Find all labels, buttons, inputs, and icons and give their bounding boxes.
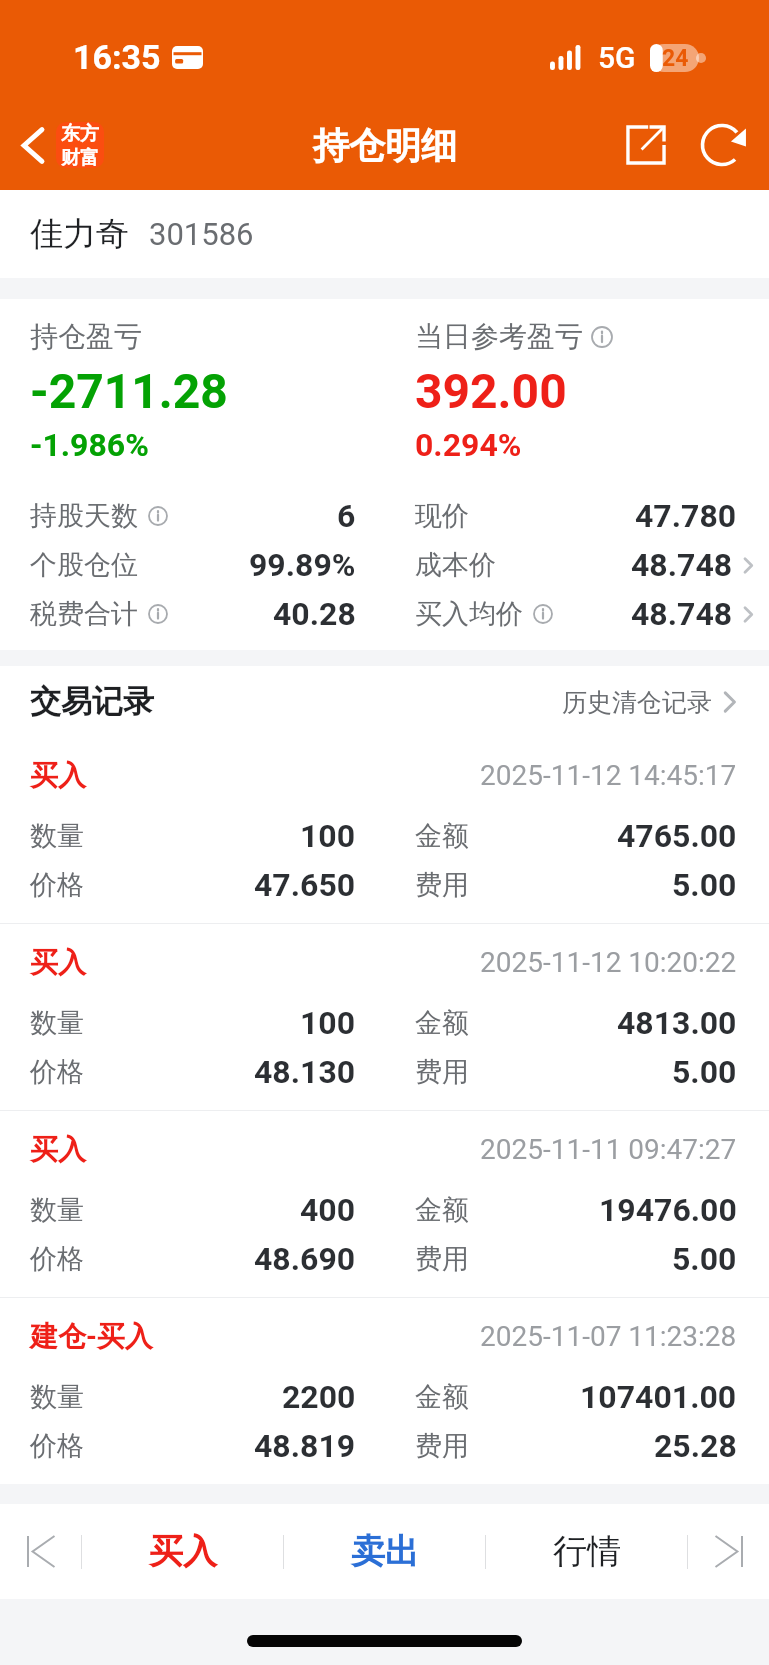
staticText: 19476.00 — [599, 1191, 737, 1229]
staticText: 行情 — [553, 1530, 621, 1573]
staticText: 301586 — [149, 216, 254, 252]
button[interactable]: 建仓-买入 — [0, 1298, 769, 1484]
staticText: 买入 — [30, 1132, 86, 1167]
staticText: 当日参考盈亏 — [415, 319, 583, 354]
staticText: 48.130 — [254, 1053, 356, 1091]
staticText: 4765.00 — [617, 817, 737, 855]
staticText: 费用 — [415, 868, 469, 902]
staticText: 2025-11-12 14:45:17 — [480, 759, 737, 792]
staticText: 金额 — [415, 1006, 469, 1040]
button[interactable]: 买入 — [0, 924, 769, 1110]
staticText: 5.00 — [672, 1053, 737, 1091]
staticText: 价格 — [30, 868, 84, 902]
staticText: -2711.28 — [30, 363, 228, 419]
staticText: 100 — [300, 817, 356, 855]
staticText: 个股仓位 — [30, 548, 138, 582]
button[interactable]: 历史清仓记录 — [562, 685, 741, 719]
staticText: 40.28 — [273, 595, 356, 633]
staticText: 数量 — [30, 1193, 84, 1227]
staticText: 价格 — [30, 1055, 84, 1089]
staticText: 6 — [337, 497, 356, 535]
staticText: 5.00 — [672, 1240, 737, 1278]
staticText: 100 — [300, 1004, 356, 1042]
staticText: 2025-11-07 11:23:28 — [480, 1320, 737, 1353]
button[interactable]: 买入 — [0, 737, 769, 923]
staticText: 税费合计 — [30, 597, 138, 631]
staticText: 48.748 — [631, 595, 733, 633]
staticText: 数量 — [30, 819, 84, 853]
staticText: 400 — [300, 1191, 356, 1229]
staticText: 建仓-买入 — [30, 1319, 153, 1354]
button[interactable]: Last stock — [688, 1504, 769, 1599]
staticText: 48.819 — [254, 1427, 356, 1465]
staticText: 成本价 — [415, 548, 496, 582]
staticText: 金额 — [415, 819, 469, 853]
staticText: 2025-11-12 10:20:22 — [480, 946, 737, 979]
staticText: 买入 — [149, 1530, 217, 1573]
staticText: 金额 — [415, 1380, 469, 1414]
staticText: 费用 — [415, 1055, 469, 1089]
staticText: 48.748 — [631, 546, 733, 584]
staticText: 4813.00 — [617, 1004, 737, 1042]
staticText: 2025-11-11 09:47:27 — [480, 1133, 737, 1166]
button[interactable]: 卖出 — [284, 1504, 485, 1599]
staticText: 费用 — [415, 1242, 469, 1276]
staticText: 东方 — [61, 122, 99, 146]
button[interactable]: 买入 — [82, 1504, 283, 1599]
staticText: 24 — [662, 45, 689, 72]
staticText: 25.28 — [654, 1427, 737, 1465]
staticText: 财富 — [61, 146, 99, 168]
staticText: 5G — [598, 40, 636, 75]
button[interactable]: 买入 — [0, 1111, 769, 1297]
staticText: 392.00 — [415, 363, 567, 419]
staticText: 金额 — [415, 1193, 469, 1227]
staticText: 16:35 — [73, 37, 161, 77]
staticText: 价格 — [30, 1429, 84, 1463]
staticText: 买入 — [30, 945, 86, 980]
staticText: 0.294% — [415, 426, 522, 464]
staticText: 47.650 — [254, 866, 356, 904]
staticText: 费用 — [415, 1429, 469, 1463]
button[interactable]: 行情 — [486, 1504, 687, 1599]
staticText: 数量 — [30, 1006, 84, 1040]
staticText: 持仓盈亏 — [30, 319, 142, 354]
staticText: 卖出 — [351, 1530, 419, 1573]
staticText: 持股天数 — [30, 499, 138, 533]
staticText: 买入 — [30, 758, 86, 793]
staticText: 持仓明细 — [313, 123, 457, 168]
button[interactable]: First stock — [0, 1504, 81, 1599]
staticText: 历史清仓记录 — [562, 687, 712, 718]
staticText: 交易记录 — [30, 682, 154, 721]
button[interactable]: Share — [613, 112, 679, 178]
staticText: 佳力奇 — [30, 213, 129, 255]
staticText: 5.00 — [672, 866, 737, 904]
staticText: -1.986% — [30, 426, 149, 464]
staticText: 数量 — [30, 1380, 84, 1414]
staticText: 107401.00 — [580, 1378, 737, 1416]
staticText: 48.690 — [254, 1240, 356, 1278]
staticText: 现价 — [415, 499, 469, 533]
button[interactable]: Back to 东方财富 — [9, 119, 104, 171]
staticText: 2200 — [282, 1378, 356, 1416]
staticText: 47.780 — [635, 497, 737, 535]
button[interactable]: Refresh — [689, 112, 755, 178]
staticText: 99.89% — [249, 546, 356, 584]
staticText: 买入均价 — [415, 597, 523, 631]
staticText: 价格 — [30, 1242, 84, 1276]
